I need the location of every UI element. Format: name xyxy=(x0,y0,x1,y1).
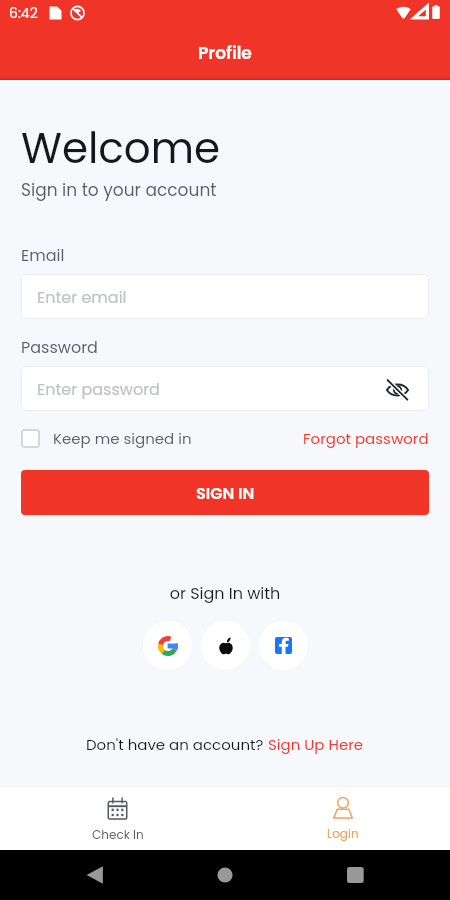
button[interactable]: Check In xyxy=(5,786,230,850)
staticText: Email xyxy=(21,244,65,266)
button[interactable]: Sign in with Apple xyxy=(201,621,250,670)
button[interactable]: Keep me signed in xyxy=(21,428,192,449)
button[interactable]: Sign Up Here xyxy=(268,734,364,755)
button[interactable]: Sign in with Facebook xyxy=(259,621,308,670)
button[interactable]: Enter email xyxy=(21,274,429,319)
staticText: Password xyxy=(21,336,98,358)
staticText: SIGN IN xyxy=(196,482,255,504)
staticText: Keep me signed in xyxy=(53,428,192,449)
button[interactable]: SIGN IN xyxy=(21,470,429,515)
staticText: or Sign In with xyxy=(21,582,429,604)
button[interactable]: Show password xyxy=(381,373,413,405)
staticText: Enter password xyxy=(37,378,160,400)
staticText: Welcome xyxy=(21,119,221,178)
staticText: Check In xyxy=(92,826,144,843)
staticText: Login xyxy=(327,825,359,842)
staticText: Sign in to your account xyxy=(21,178,217,202)
button[interactable]: Forgot password xyxy=(303,428,429,449)
staticText: Don't have an account? xyxy=(86,734,268,755)
button[interactable]: Login xyxy=(230,786,450,850)
button[interactable]: Enter password xyxy=(21,366,429,411)
button[interactable]: Sign in with Google xyxy=(143,621,192,670)
staticText: 6:42 xyxy=(9,3,38,23)
staticText: Profile xyxy=(198,41,252,65)
staticText: Enter email xyxy=(37,286,127,308)
